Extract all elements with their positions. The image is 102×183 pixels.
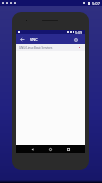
button[interactable]: Recent apps (65, 146, 72, 153)
staticText: GNU/Linux Basic Services (19, 46, 53, 50)
staticText: VNC (30, 37, 38, 42)
button[interactable]: GNU/Linux Basic Services (16, 44, 85, 51)
button[interactable]: Navigate up (16, 34, 28, 44)
staticText: 5:09 (75, 30, 83, 34)
button[interactable]: Home (47, 146, 54, 153)
button[interactable]: Back (29, 146, 36, 153)
button[interactable]: Add connection (71, 34, 81, 44)
staticText: 5:07 (92, 1, 100, 6)
